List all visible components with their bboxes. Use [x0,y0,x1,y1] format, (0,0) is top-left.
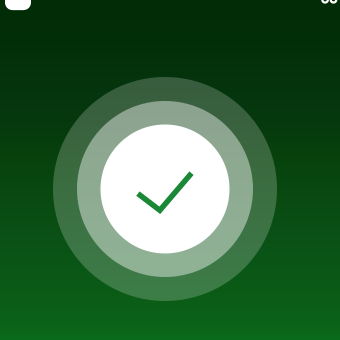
button[interactable]: Shopping cart [305,0,336,10]
button[interactable]: Back [5,0,31,10]
